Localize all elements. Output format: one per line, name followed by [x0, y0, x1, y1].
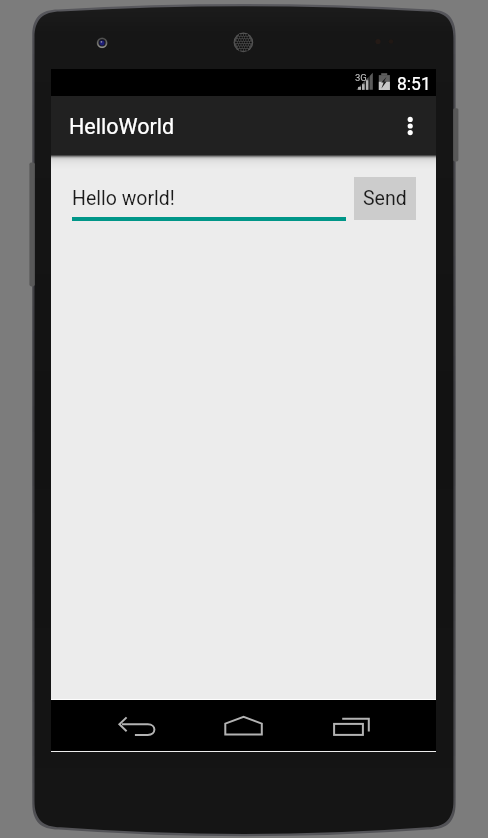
button[interactable]: Back [107, 699, 187, 751]
staticText: Send [363, 187, 407, 210]
button[interactable]: Home [203, 699, 283, 751]
button[interactable]: More options [388, 97, 436, 155]
staticText: Hello world! [72, 187, 175, 210]
staticText: 3G [355, 72, 367, 83]
button[interactable]: Recent apps [300, 699, 380, 751]
button[interactable]: Hello world! [72, 177, 346, 221]
staticText: 8:51 [397, 74, 431, 95]
button[interactable]: Send [354, 177, 416, 220]
staticText: HelloWorld [69, 114, 175, 139]
